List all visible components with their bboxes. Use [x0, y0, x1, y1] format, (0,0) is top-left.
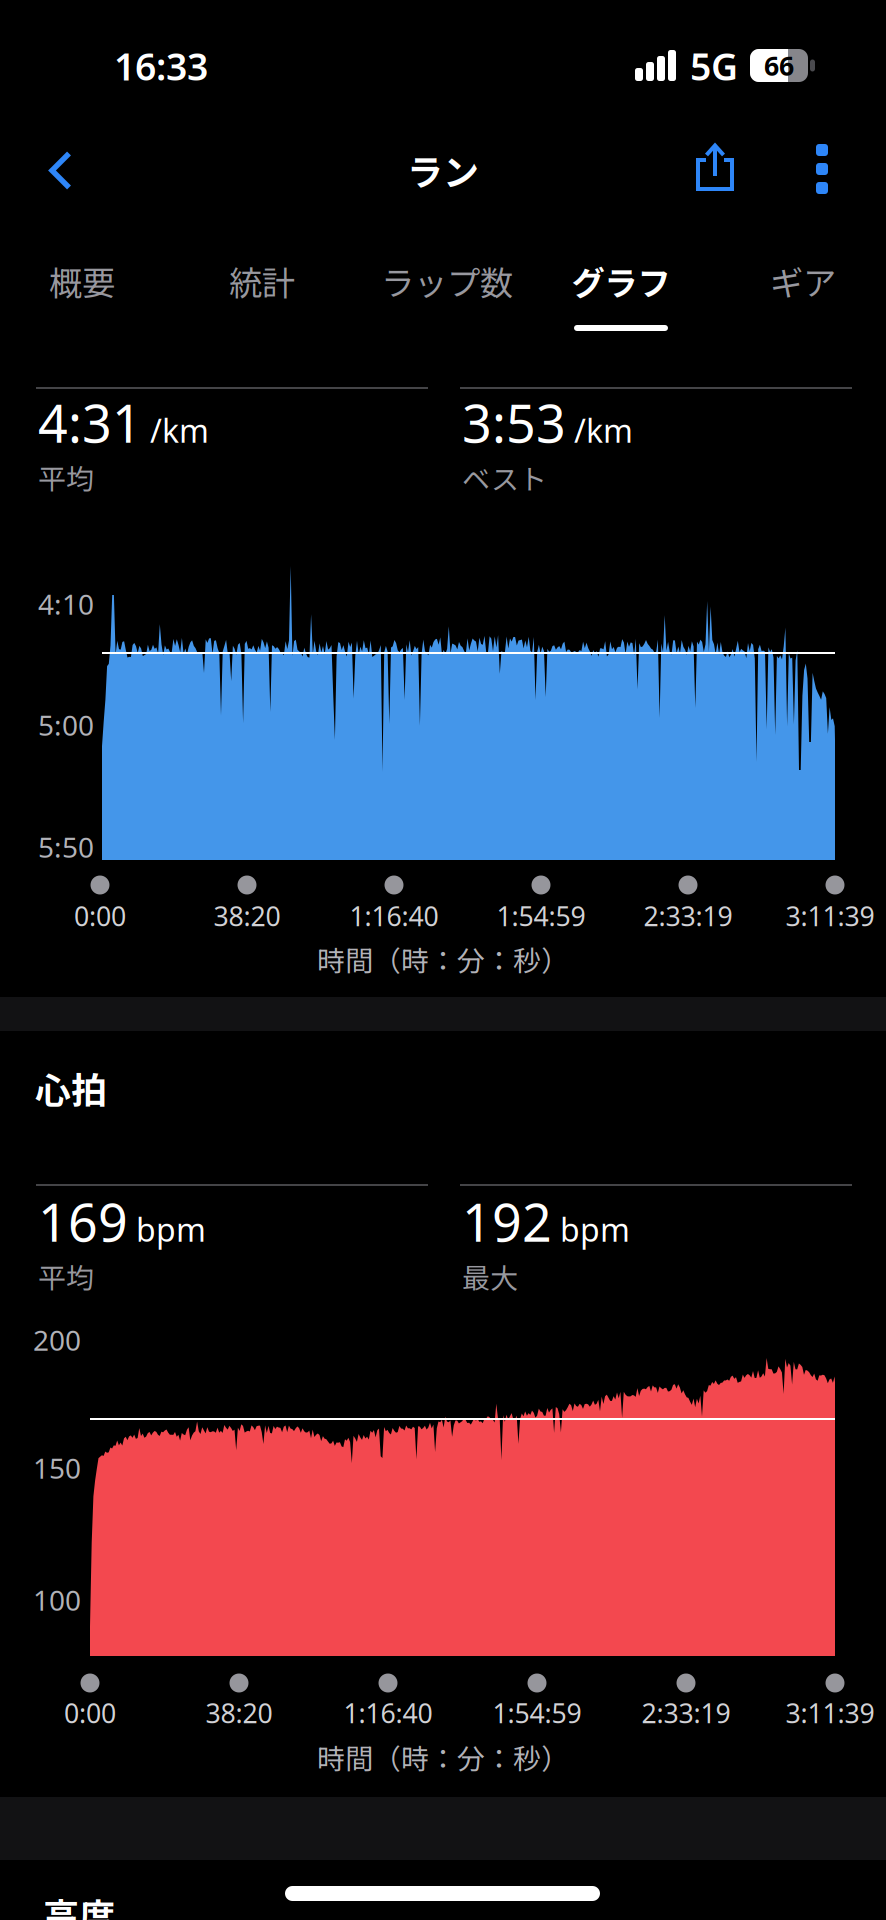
staticText: 150: [33, 1449, 81, 1487]
staticText: 最大: [462, 1256, 518, 1297]
staticText: 100: [33, 1581, 81, 1619]
staticText: 平均: [38, 457, 94, 498]
button[interactable]: 統計: [229, 246, 295, 316]
button[interactable]: Share: [689, 143, 741, 193]
staticText: 5G: [690, 41, 738, 91]
staticText: 時間（時：分：秒）: [317, 939, 569, 979]
staticText: グラフ: [571, 257, 670, 305]
staticText: 統計: [229, 257, 295, 305]
staticText: 3:11:39: [785, 1695, 874, 1731]
staticText: 38:20: [205, 1695, 272, 1731]
button[interactable]: 概要: [49, 246, 115, 316]
staticText: ベスト: [462, 457, 547, 498]
staticText: 5:00: [38, 706, 94, 744]
staticText: ラン: [407, 144, 479, 196]
staticText: 200: [33, 1321, 81, 1359]
staticText: 3:11:39: [785, 898, 874, 934]
staticText: 時間（時：分：秒）: [317, 1737, 569, 1777]
staticText: /km: [150, 409, 209, 451]
staticText: 1:54:59: [492, 1695, 581, 1731]
button[interactable]: ラップ数: [381, 246, 513, 316]
staticText: 1:16:40: [349, 898, 438, 934]
staticText: 169: [38, 1187, 128, 1256]
staticText: 5:50: [38, 828, 94, 866]
staticText: 38:20: [213, 898, 280, 934]
staticText: 平均: [38, 1256, 94, 1297]
staticText: 4:31: [38, 388, 142, 457]
staticText: ラップ数: [381, 257, 513, 305]
staticText: 心拍: [35, 1062, 107, 1114]
staticText: 1:54:59: [496, 898, 585, 934]
staticText: 3:53: [462, 388, 566, 457]
staticText: 概要: [49, 257, 115, 305]
button[interactable]: ギア: [770, 246, 836, 316]
staticText: ギア: [770, 257, 836, 305]
staticText: bpm: [560, 1208, 630, 1250]
staticText: bpm: [136, 1208, 206, 1250]
button[interactable]: Back: [48, 151, 74, 190]
staticText: 192: [462, 1187, 552, 1256]
staticText: 2:33:19: [643, 898, 732, 934]
staticText: 0:00: [74, 898, 126, 934]
staticText: 2:33:19: [641, 1695, 730, 1731]
button[interactable]: グラフ: [571, 246, 670, 316]
staticText: /km: [574, 409, 633, 451]
staticText: 66: [764, 48, 794, 83]
staticText: 4:10: [38, 585, 94, 623]
staticText: 高度: [43, 1888, 115, 1920]
staticText: 0:00: [64, 1695, 116, 1731]
staticText: 1:16:40: [343, 1695, 432, 1731]
button[interactable]: More: [800, 144, 844, 194]
staticText: 16:33: [114, 41, 208, 91]
